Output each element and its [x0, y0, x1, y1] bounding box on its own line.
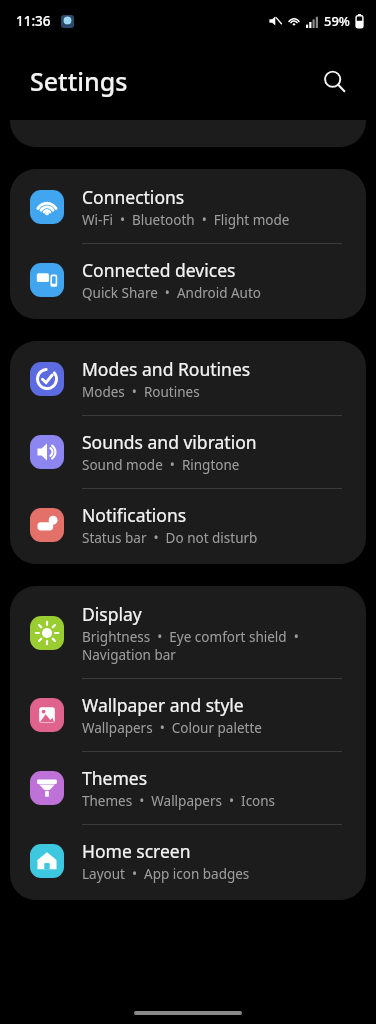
staticText: Display: [82, 602, 142, 626]
staticText: Wi-Fi • Bluetooth • Flight mode: [82, 211, 290, 229]
button[interactable]: Connected devices: [10, 244, 366, 319]
staticText: 59%: [324, 12, 350, 30]
button[interactable]: Sounds and vibration: [10, 416, 366, 488]
staticText: Notifications: [82, 503, 187, 527]
staticText: Layout • App icon badges: [82, 865, 250, 883]
staticText: Connected devices: [82, 258, 236, 282]
button[interactable]: [10, 120, 366, 147]
staticText: Home screen: [82, 839, 191, 863]
staticText: Modes and Routines: [82, 357, 251, 381]
staticText: Modes • Routines: [82, 383, 200, 401]
staticText: 11:36: [16, 12, 51, 30]
staticText: Wallpapers • Colour palette: [82, 719, 262, 737]
button[interactable]: Wallpaper and style: [10, 679, 366, 751]
staticText: Connections: [82, 185, 185, 209]
staticText: Status bar • Do not disturb: [82, 529, 258, 547]
staticText: Settings: [30, 64, 128, 98]
staticText: Themes: [82, 766, 148, 790]
button[interactable]: Display: [10, 586, 366, 678]
staticText: Quick Share • Android Auto: [82, 284, 261, 302]
button[interactable]: Themes: [10, 752, 366, 824]
staticText: Wallpaper and style: [82, 693, 244, 717]
staticText: Sounds and vibration: [82, 430, 257, 454]
button[interactable]: Search: [314, 61, 354, 101]
button[interactable]: Modes and Routines: [10, 341, 366, 415]
staticText: Sound mode • Ringtone: [82, 456, 240, 474]
button[interactable]: Connections: [10, 169, 366, 243]
staticText: Themes • Wallpapers • Icons: [82, 792, 276, 810]
staticText: Brightness • Eye comfort shield • Naviga…: [82, 628, 348, 664]
button[interactable]: Notifications: [10, 489, 366, 564]
button[interactable]: Home screen: [10, 825, 366, 900]
